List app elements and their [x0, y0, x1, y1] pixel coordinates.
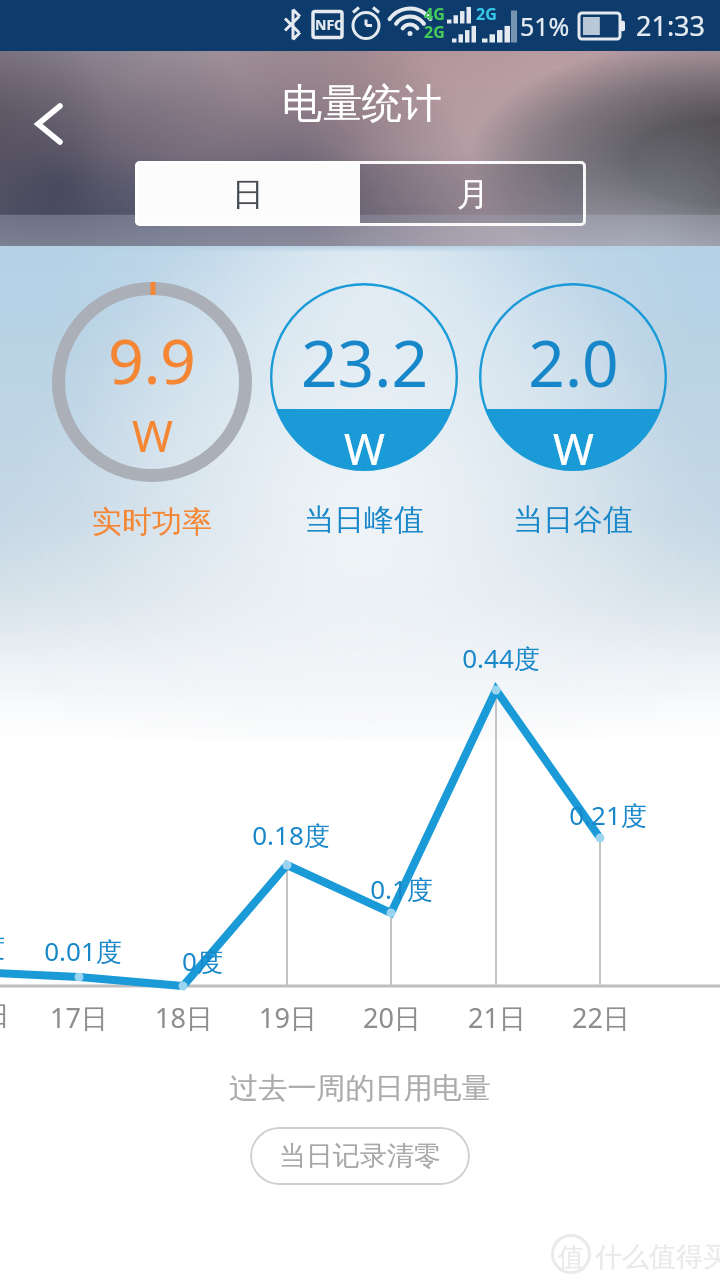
staticText: 51% — [520, 9, 570, 43]
staticText: 0.21度 — [569, 797, 647, 833]
button[interactable]: 月 — [360, 161, 586, 226]
button[interactable] — [479, 283, 667, 471]
button[interactable]: 日 — [135, 161, 360, 226]
staticText: 月 — [457, 174, 489, 214]
staticText: 2.0 — [528, 319, 619, 406]
staticText: 21:33 — [636, 7, 706, 44]
staticText: 实时功率 — [92, 503, 212, 541]
staticText: 4G — [424, 3, 445, 25]
staticText: 23.2 — [301, 319, 428, 406]
staticText: 0度 — [182, 943, 223, 979]
staticText: 什么值得买 — [595, 1240, 720, 1274]
staticText: 日 — [0, 999, 10, 1033]
button[interactable] — [270, 283, 458, 471]
staticText: 0.01度 — [44, 933, 122, 969]
staticText: 20日 — [363, 999, 421, 1036]
staticText: W — [132, 405, 173, 465]
button[interactable]: Back — [18, 93, 80, 155]
staticText: 18日 — [155, 999, 213, 1036]
staticText: 当日峰值 — [304, 501, 424, 539]
staticText: 9.9 — [108, 318, 196, 402]
staticText: 0.1度 — [370, 871, 433, 907]
staticText: 17日 — [50, 999, 108, 1036]
button[interactable]: 当日记录清零 — [250, 1127, 470, 1185]
staticText: 19日 — [259, 999, 317, 1036]
staticText: W — [553, 418, 594, 478]
staticText: 过去一周的日用电量 — [0, 1070, 720, 1107]
staticText: 2G — [424, 21, 445, 43]
staticText: 值 — [558, 1241, 584, 1274]
staticText: 当日谷值 — [513, 501, 633, 539]
staticText: 0.44度 — [462, 640, 540, 676]
staticText: 21日 — [468, 999, 526, 1036]
staticText: 当日记录清零 — [279, 1139, 441, 1173]
staticText: 电量统计 — [282, 78, 442, 128]
button[interactable] — [52, 282, 252, 482]
staticText: 日 — [232, 174, 264, 214]
staticText: 22日 — [572, 999, 630, 1036]
staticText: W — [344, 418, 385, 478]
staticText: 度 — [0, 932, 5, 965]
staticText: 2G — [476, 3, 497, 25]
staticText: 0.18度 — [252, 817, 330, 853]
staticText: NFC — [315, 15, 344, 34]
